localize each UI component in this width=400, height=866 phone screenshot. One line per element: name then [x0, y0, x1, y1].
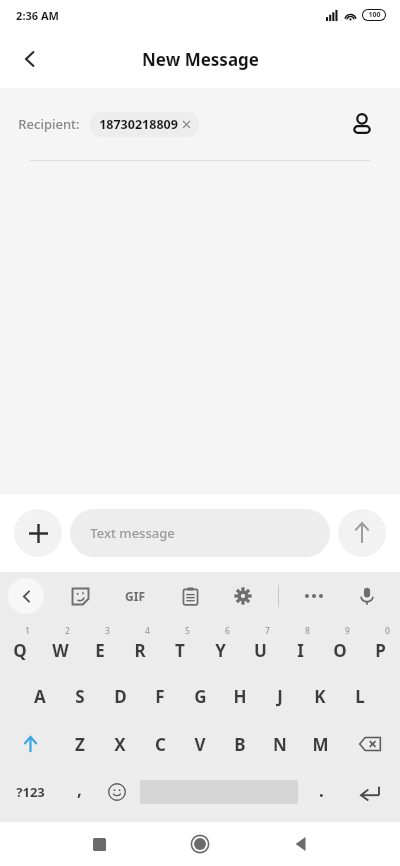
button[interactable]: U	[240, 622, 280, 672]
button[interactable]: Voice input	[349, 578, 385, 614]
staticText: B	[234, 733, 246, 756]
staticText: R	[134, 639, 146, 662]
button[interactable]: B	[220, 720, 260, 768]
staticText: 9	[345, 625, 350, 637]
button[interactable]: E	[80, 622, 120, 672]
button[interactable]: Z	[60, 720, 100, 768]
button[interactable]: W	[40, 622, 80, 672]
button[interactable]: H	[220, 672, 260, 720]
staticText: 4	[145, 625, 150, 637]
staticText: U	[254, 639, 267, 662]
staticText: Recipient:	[18, 115, 80, 133]
button[interactable]: I	[280, 622, 320, 672]
staticText: Q	[13, 639, 27, 662]
button[interactable]: A	[20, 672, 60, 720]
staticText: ,	[77, 778, 82, 801]
staticText: 100	[368, 10, 381, 20]
button[interactable]: 18730218809	[90, 112, 199, 137]
staticText: X	[114, 733, 126, 756]
button[interactable]: N	[260, 720, 300, 768]
button[interactable]: V	[180, 720, 220, 768]
staticText: T	[175, 639, 185, 662]
staticText: G	[194, 685, 207, 708]
button[interactable]: C	[140, 720, 180, 768]
button[interactable]: Text message	[70, 509, 330, 557]
button[interactable]: Back	[279, 822, 323, 866]
staticText: O	[333, 639, 347, 662]
button[interactable]: GIF	[115, 576, 155, 616]
staticText: 8	[305, 625, 310, 637]
button[interactable]: Emoji	[98, 768, 136, 816]
button[interactable]: T	[160, 622, 200, 672]
staticText: F	[155, 685, 165, 708]
button[interactable]: ?123	[0, 768, 60, 816]
staticText: 0	[385, 625, 390, 637]
staticText: 2:36 AM	[16, 8, 59, 23]
button[interactable]: S	[60, 672, 100, 720]
button[interactable]: O	[320, 622, 360, 672]
button[interactable]: Back	[8, 37, 52, 81]
button[interactable]: P	[360, 622, 400, 672]
staticText: W	[52, 639, 69, 662]
button[interactable]: Y	[200, 622, 240, 672]
button[interactable]: Add attachment	[14, 509, 62, 557]
button[interactable]: Settings	[225, 578, 261, 614]
button[interactable]: Comma	[60, 768, 98, 816]
staticText: P	[375, 639, 386, 662]
staticText: Y	[215, 639, 226, 662]
staticText: S	[75, 685, 85, 708]
staticText: 2	[65, 625, 70, 637]
staticText: 6	[225, 625, 230, 637]
button[interactable]: R	[120, 622, 160, 672]
button[interactable]: K	[300, 672, 340, 720]
staticText: 7	[265, 625, 270, 637]
button[interactable]: Collapse toolbar	[8, 578, 44, 614]
button[interactable]: Backspace	[340, 720, 400, 768]
staticText: .	[319, 779, 324, 802]
button[interactable]: X	[100, 720, 140, 768]
button[interactable]: M	[300, 720, 340, 768]
button[interactable]: D	[100, 672, 140, 720]
staticText: Text message	[90, 524, 175, 542]
staticText: A	[34, 685, 46, 708]
button[interactable]: More options	[296, 578, 332, 614]
button[interactable]: Enter	[340, 768, 400, 816]
button[interactable]: Choose contact	[342, 104, 382, 144]
staticText: N	[273, 733, 287, 756]
staticText: 1	[25, 625, 30, 637]
button[interactable]: F	[140, 672, 180, 720]
staticText: H	[233, 685, 247, 708]
staticText: 18730218809	[99, 116, 178, 133]
button[interactable]: L	[340, 672, 380, 720]
staticText: 5	[185, 625, 190, 637]
button[interactable]: Home	[178, 822, 222, 866]
staticText: 3	[105, 625, 110, 637]
staticText: C	[155, 733, 166, 756]
staticText: E	[95, 639, 105, 662]
staticText: K	[314, 685, 326, 708]
staticText: L	[355, 685, 365, 708]
staticText: V	[194, 733, 206, 756]
staticText: Z	[75, 733, 85, 756]
staticText: D	[114, 685, 127, 708]
staticText: M	[312, 733, 329, 756]
button[interactable]: Q	[0, 622, 40, 672]
button[interactable]: Period	[302, 768, 340, 816]
button[interactable]: G	[180, 672, 220, 720]
button[interactable]: Send	[338, 509, 386, 557]
staticText: ?123	[16, 783, 45, 801]
button[interactable]: Clipboard	[172, 578, 208, 614]
staticText: GIF	[125, 588, 145, 604]
button[interactable]: Recents	[77, 822, 121, 866]
button[interactable]: Stickers	[62, 578, 98, 614]
staticText: J	[277, 685, 283, 708]
staticText: I	[297, 639, 304, 662]
staticText: New Message	[142, 48, 259, 71]
button[interactable]: Shift	[0, 720, 60, 768]
button[interactable]: J	[260, 672, 300, 720]
